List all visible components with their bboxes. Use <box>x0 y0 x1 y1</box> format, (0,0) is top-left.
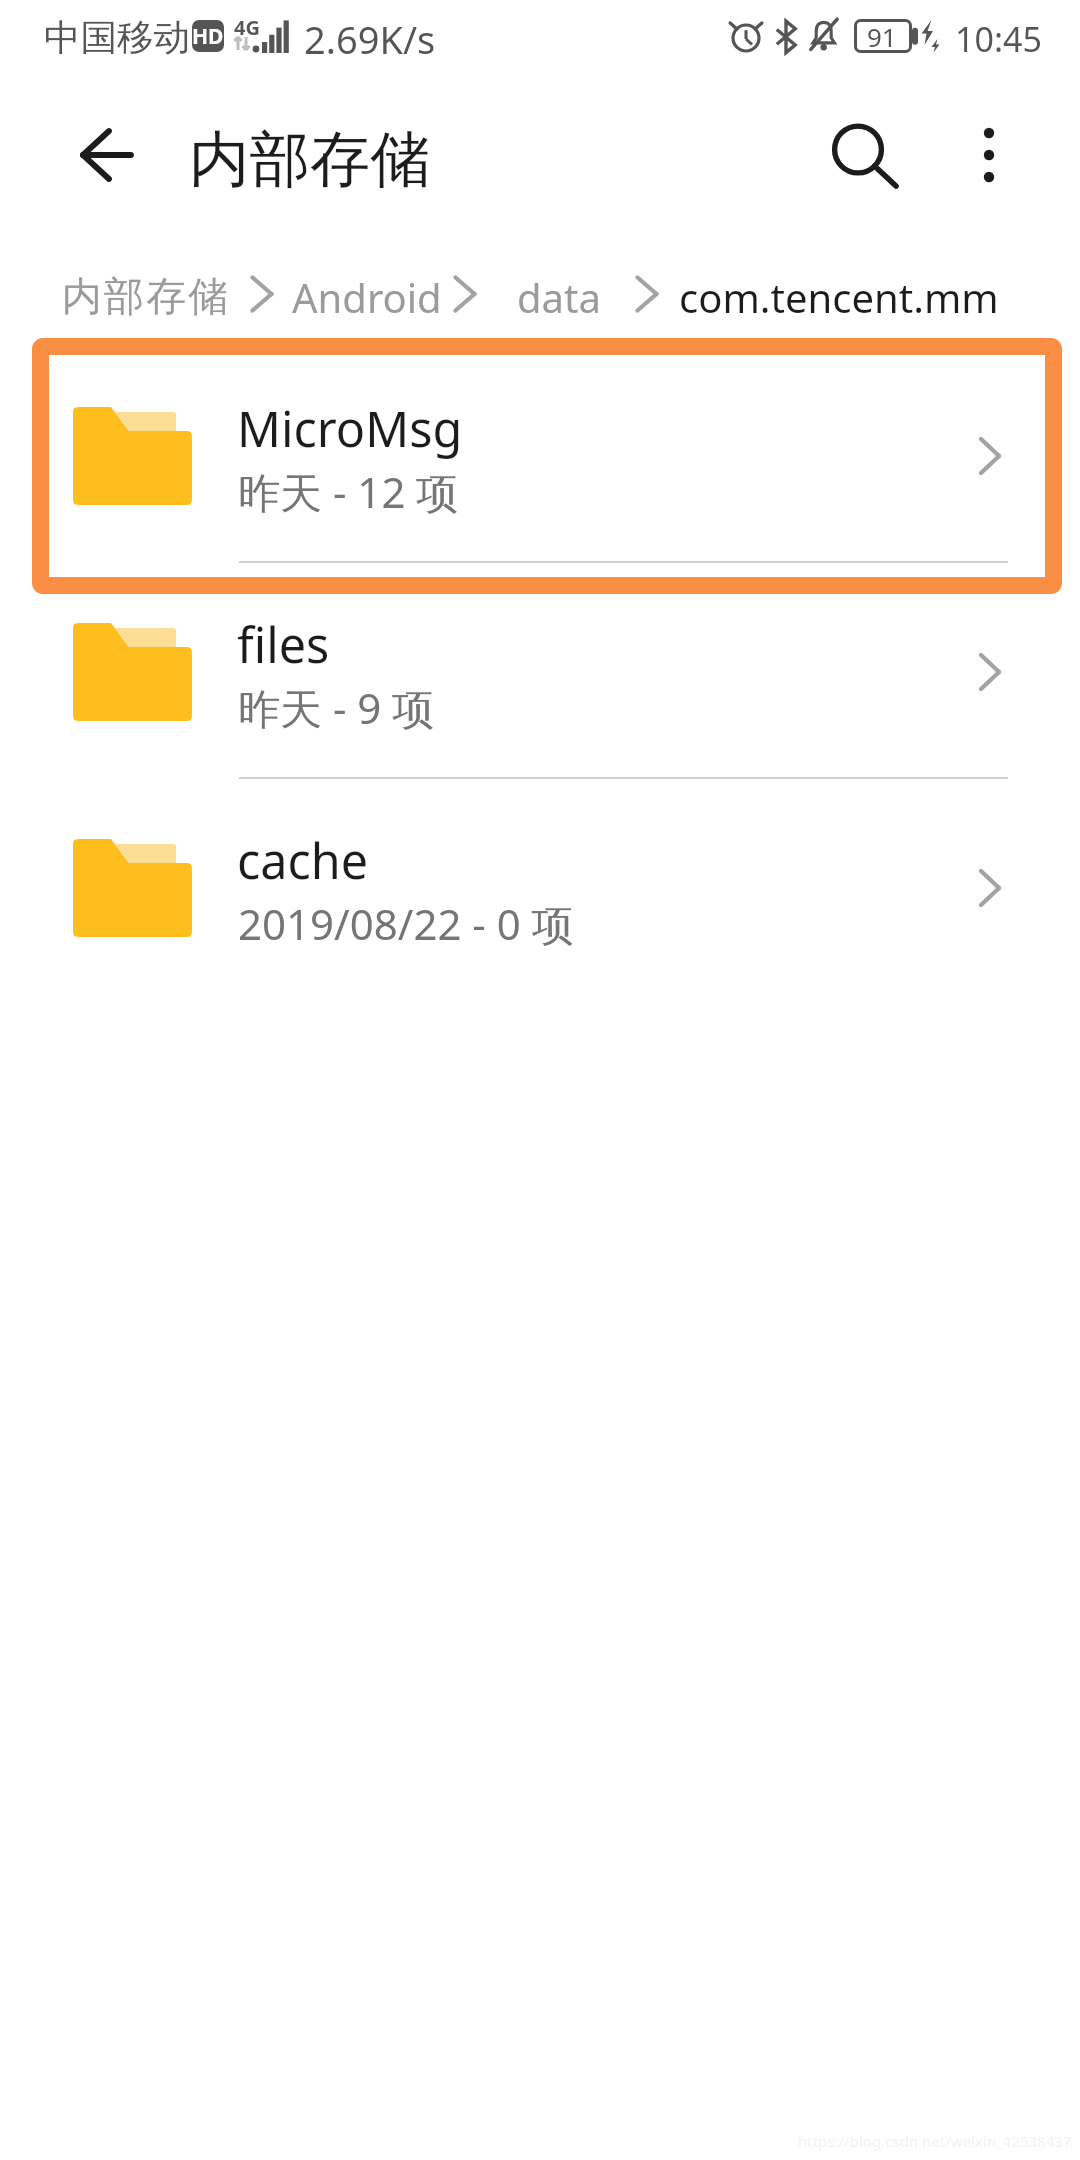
staticText: 91 <box>867 19 897 53</box>
staticText: 10:45 <box>955 16 1042 62</box>
staticText: 4G <box>234 14 260 41</box>
staticText: 2019/08/22 - 0 项 <box>238 895 574 952</box>
button[interactable]: files <box>0 564 1080 780</box>
button[interactable]: More options <box>946 105 1034 193</box>
staticText: files <box>237 611 330 677</box>
button[interactable]: Search <box>810 105 906 201</box>
staticText: MicroMsg <box>237 395 463 461</box>
staticText: 中国移动 <box>44 15 190 61</box>
staticText: 2.69K/s <box>304 13 436 65</box>
staticText: 昨天 - 12 项 <box>238 463 459 520</box>
button[interactable]: cache <box>0 780 1080 996</box>
button[interactable]: Android <box>292 270 442 324</box>
staticText: cache <box>237 827 369 893</box>
button[interactable]: com.tencent.mm <box>679 270 999 324</box>
button[interactable]: MicroMsg <box>0 348 1080 564</box>
button[interactable]: 内部存储 <box>61 271 229 321</box>
staticText: 内部存储 <box>189 122 431 198</box>
button[interactable]: Back <box>60 108 154 202</box>
staticText: HD <box>192 22 224 51</box>
button[interactable]: data <box>517 270 601 324</box>
staticText: 昨天 - 9 项 <box>238 679 435 736</box>
staticText: https://blog.csdn.net/weixin_42538437 <box>798 2131 1072 2151</box>
